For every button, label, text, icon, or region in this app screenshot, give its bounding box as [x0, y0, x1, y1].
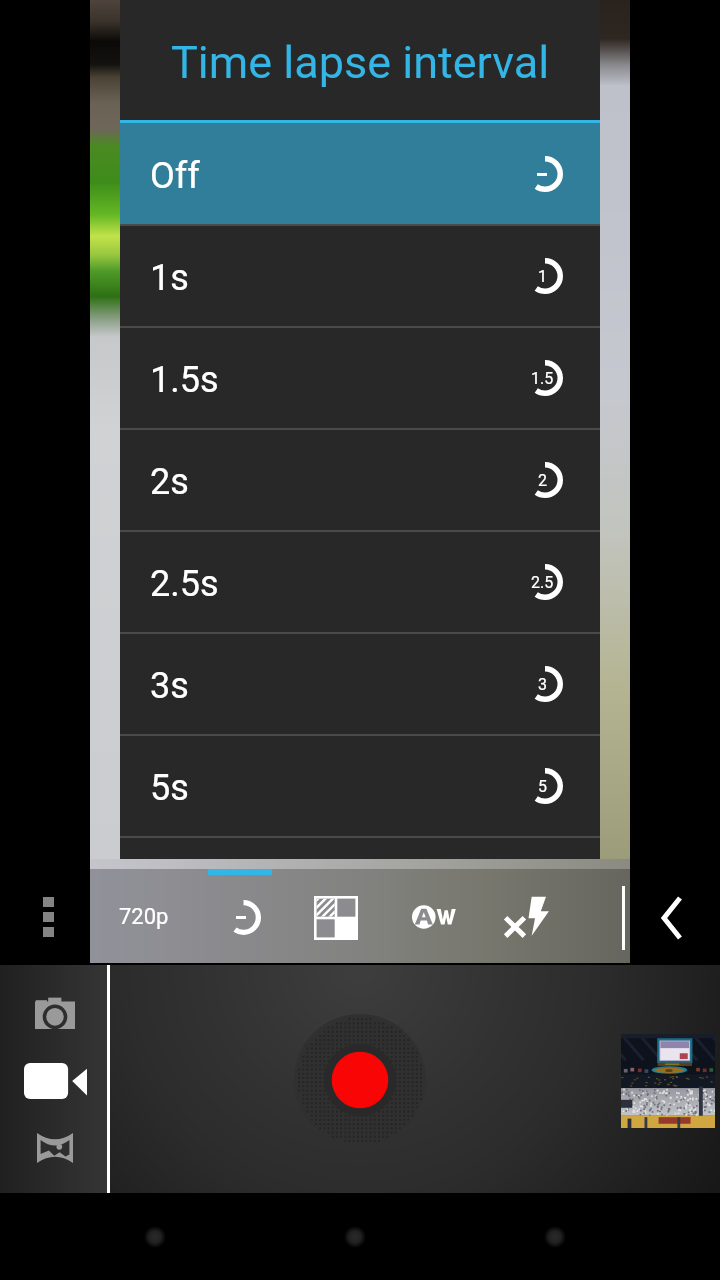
button[interactable]: 720p: [104, 889, 184, 945]
staticText: 5: [538, 777, 547, 796]
staticText: 1.5s: [150, 359, 219, 401]
button[interactable]: Scene mode: [306, 888, 366, 948]
button[interactable]: Back: [95, 1193, 215, 1280]
staticText: 5s: [150, 767, 189, 809]
button[interactable]: 2.5s: [120, 531, 600, 633]
button[interactable]: White balance: [408, 889, 464, 945]
button[interactable]: More options: [18, 877, 78, 957]
button[interactable]: Flash off: [500, 890, 556, 942]
button[interactable]: Back: [650, 888, 690, 948]
staticText: 1s: [150, 257, 189, 299]
button[interactable]: Time lapse interval: [213, 887, 274, 948]
button[interactable]: Photo mode: [20, 985, 90, 1045]
button[interactable]: 1s: [120, 225, 600, 327]
staticText: 2s: [150, 461, 189, 503]
staticText: 1: [538, 267, 547, 286]
button[interactable]: Recent apps: [495, 1193, 615, 1280]
staticText: 720p: [119, 904, 169, 930]
staticText: Time lapse interval: [171, 36, 550, 89]
button[interactable]: 3s: [120, 633, 600, 735]
staticText: 1.5: [531, 369, 554, 388]
button[interactable]: 2s: [120, 429, 600, 531]
button[interactable]: Home: [295, 1193, 415, 1280]
button[interactable]: Video mode: [16, 1053, 94, 1107]
staticText: 2.5s: [150, 563, 219, 605]
staticText: 3: [538, 675, 547, 694]
staticText: 2: [538, 471, 547, 490]
button[interactable]: Panorama mode: [20, 1120, 90, 1174]
staticText: 2.5: [531, 573, 554, 592]
button[interactable]: Off: [120, 123, 600, 225]
staticText: 3s: [150, 665, 189, 707]
button[interactable]: 1.5s: [120, 327, 600, 429]
button[interactable]: Record: [292, 1012, 428, 1148]
button[interactable]: 5s: [120, 735, 600, 837]
button[interactable]: Last photo: [621, 1034, 715, 1128]
staticText: Off: [150, 155, 200, 197]
